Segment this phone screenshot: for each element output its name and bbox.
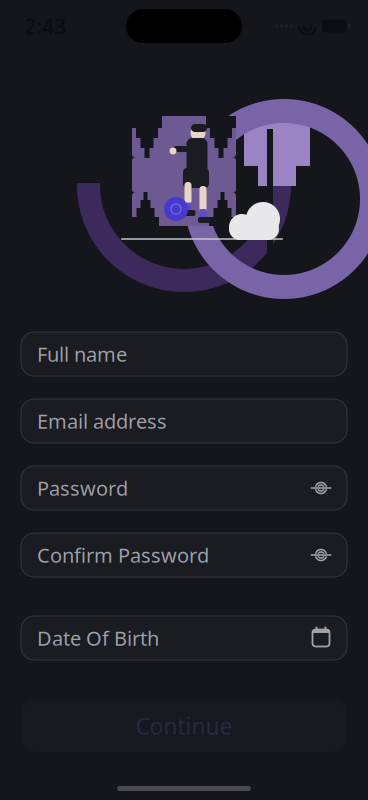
staticText: Email address xyxy=(37,408,167,434)
button[interactable]: Full name xyxy=(21,332,347,376)
staticText: Full name xyxy=(37,341,127,367)
staticText: Confirm Password xyxy=(37,542,209,568)
button[interactable]: Confirm Password xyxy=(21,533,347,577)
button[interactable]: Date Of Birth xyxy=(21,616,347,660)
button[interactable]: Email address xyxy=(21,399,347,443)
staticText: Date Of Birth xyxy=(37,625,159,651)
button[interactable]: Continue xyxy=(21,700,347,752)
staticText: Continue xyxy=(135,711,232,741)
button[interactable]: Password xyxy=(21,466,347,510)
staticText: 2:43 xyxy=(24,12,66,40)
staticText: Password xyxy=(37,475,128,501)
